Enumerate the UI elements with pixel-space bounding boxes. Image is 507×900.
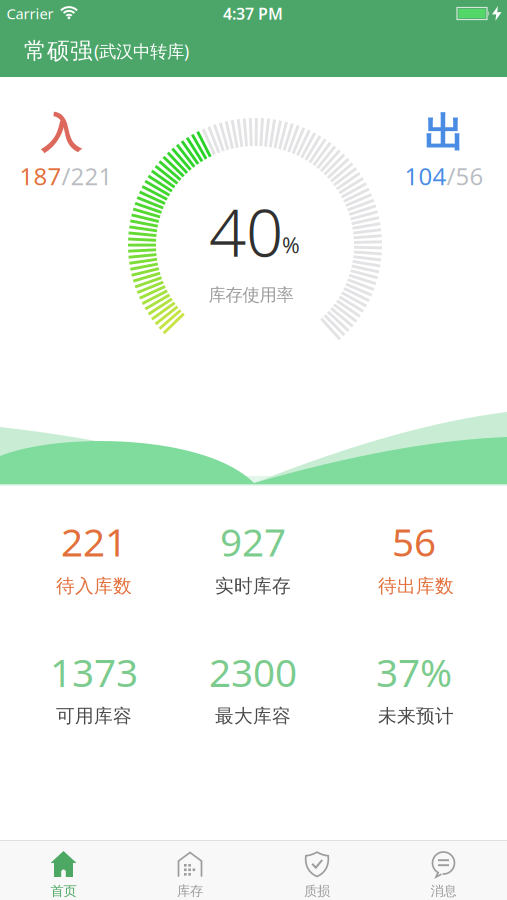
staticText: 质损: [304, 883, 330, 899]
staticText: 1373: [50, 646, 138, 698]
staticText: 未来预计: [378, 704, 454, 727]
staticText: 库存: [177, 883, 203, 899]
button[interactable]: 库存: [127, 840, 253, 900]
staticText: (武汉中转库): [94, 39, 189, 62]
staticText: /221: [61, 160, 112, 192]
staticText: 221: [61, 516, 127, 567]
staticText: 40: [209, 188, 283, 275]
staticText: 入: [41, 109, 81, 158]
staticText: 56: [392, 516, 436, 567]
staticText: %: [282, 231, 300, 259]
staticText: /56: [446, 160, 483, 192]
staticText: 187: [19, 160, 61, 192]
staticText: 实时库存: [215, 574, 291, 597]
staticText: 常硕强: [24, 37, 93, 65]
staticText: 2300: [209, 646, 297, 698]
button[interactable]: 消息: [380, 840, 506, 900]
staticText: 4:37 PM: [223, 3, 283, 24]
button[interactable]: 首页: [0, 840, 126, 900]
staticText: 待出库数: [378, 574, 454, 597]
button[interactable]: 质损: [254, 840, 380, 900]
staticText: 927: [220, 516, 286, 567]
staticText: 104: [404, 160, 446, 192]
staticText: 出: [424, 109, 464, 158]
staticText: 37%: [376, 646, 452, 698]
staticText: Carrier: [6, 4, 53, 23]
staticText: 最大库容: [215, 704, 291, 727]
staticText: 可用库容: [56, 704, 132, 727]
staticText: 消息: [430, 883, 456, 899]
staticText: 库存使用率: [208, 284, 293, 306]
staticText: 首页: [50, 883, 76, 899]
staticText: 待入库数: [56, 574, 132, 597]
